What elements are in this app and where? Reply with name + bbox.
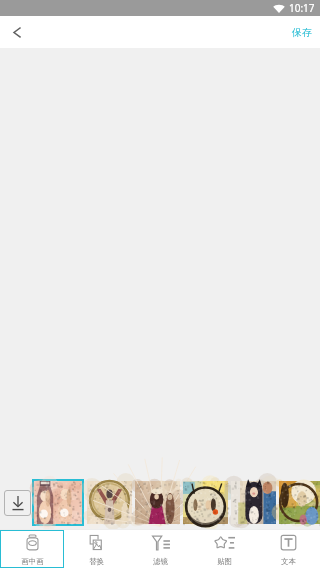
button[interactable]: 贴图	[192, 530, 256, 568]
button[interactable]: Photo	[279, 481, 320, 524]
button[interactable]: Photo	[87, 481, 132, 524]
button[interactable]: 保存	[284, 20, 320, 45]
button[interactable]: 文本	[256, 530, 320, 568]
button[interactable]: 滤镜	[128, 530, 192, 568]
button[interactable]: Selected photo	[34, 481, 82, 524]
staticText: 滤镜	[153, 557, 168, 566]
button[interactable]: Photo	[135, 481, 180, 524]
staticText: 替换	[89, 557, 104, 566]
button[interactable]: Download	[4, 490, 31, 516]
staticText: 保存	[292, 26, 312, 39]
staticText: 文本	[281, 557, 296, 566]
button[interactable]: 画中画	[0, 530, 64, 568]
staticText: 10:17	[289, 1, 315, 15]
staticText: 画中画	[21, 557, 44, 566]
button[interactable]: Photo	[231, 481, 276, 524]
button[interactable]: Photo	[183, 481, 228, 524]
button[interactable]: 替换	[64, 530, 128, 568]
button[interactable]: Back	[0, 16, 34, 48]
staticText: 贴图	[217, 557, 232, 566]
